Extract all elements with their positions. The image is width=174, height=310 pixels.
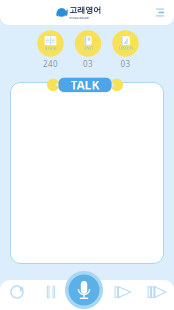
staticText: 고래영어	[69, 5, 101, 15]
button[interactable]: Record	[65, 271, 103, 309]
staticText: TALK	[70, 77, 99, 93]
button[interactable]: Play faster	[140, 277, 174, 307]
staticText: LESSON	[118, 45, 132, 51]
button[interactable]: Pause	[34, 277, 68, 307]
button[interactable]: Menu	[149, 0, 171, 25]
staticText: UNIT	[83, 45, 93, 51]
button[interactable]: UNIT	[69, 30, 107, 69]
button[interactable]: LESSON	[107, 30, 144, 69]
staticText: 03	[83, 59, 93, 69]
staticText: WHALE ENGLISH	[69, 16, 89, 20]
staticText: 03	[120, 59, 130, 69]
staticText: 240	[43, 59, 58, 69]
staticText: BOOK	[44, 45, 56, 51]
button[interactable]: Play slower	[106, 277, 140, 307]
button[interactable]: BOOK	[32, 30, 69, 69]
button[interactable]: Repeat	[0, 277, 34, 307]
